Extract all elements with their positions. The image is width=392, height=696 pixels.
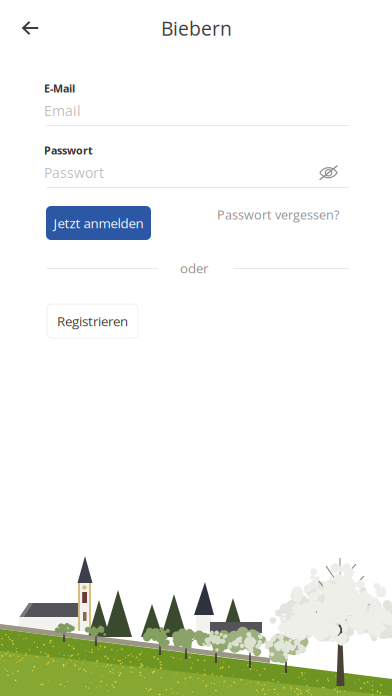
button[interactable]: Registrieren bbox=[47, 304, 138, 338]
button[interactable]: Jetzt anmelden bbox=[46, 206, 151, 240]
staticText: Biebern bbox=[161, 15, 232, 41]
staticText: oder bbox=[180, 259, 208, 277]
staticText: Passwort vergessen? bbox=[217, 206, 339, 223]
staticText: Registrieren bbox=[57, 312, 128, 330]
staticText: Email bbox=[44, 101, 81, 120]
button[interactable]: Zurück bbox=[0, 0, 55, 57]
staticText: E-Mail bbox=[44, 81, 75, 95]
staticText: Passwort bbox=[44, 163, 104, 182]
staticText: Passwort bbox=[44, 143, 93, 157]
staticText: Jetzt anmelden bbox=[53, 214, 143, 232]
button[interactable]: Passwort anzeigen bbox=[311, 157, 346, 188]
button[interactable]: Passwort vergessen? bbox=[210, 199, 346, 230]
